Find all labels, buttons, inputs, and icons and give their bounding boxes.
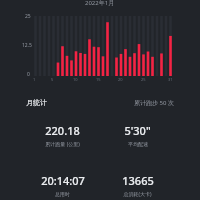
staticText: 25 bbox=[25, 13, 31, 20]
staticText: 0 bbox=[27, 71, 30, 78]
staticText: 12.5 bbox=[22, 42, 32, 49]
staticText: 5 bbox=[51, 77, 54, 82]
button[interactable]: 20:14:07 bbox=[25, 173, 100, 197]
staticText: 10 bbox=[73, 77, 78, 82]
button[interactable]: 220.18 bbox=[25, 123, 100, 148]
staticText: 2022年1月 bbox=[85, 0, 115, 7]
staticText: 1 bbox=[33, 77, 36, 82]
staticText: 总用时 bbox=[55, 191, 70, 197]
staticText: 31 bbox=[168, 77, 173, 82]
staticText: 15 bbox=[96, 77, 101, 82]
staticText: 月统计 bbox=[26, 98, 47, 107]
staticText: 20:14:07 bbox=[41, 173, 85, 188]
staticText: 13665 bbox=[122, 173, 154, 188]
button[interactable]: 13665 bbox=[100, 173, 175, 198]
staticText: 25 bbox=[141, 77, 146, 82]
staticText: 5'30" bbox=[124, 123, 151, 138]
button[interactable]: 5'30" bbox=[100, 123, 175, 147]
staticText: 累计跑量 (公里) bbox=[45, 141, 80, 148]
staticText: 累计跑步 50 次 bbox=[134, 99, 174, 107]
staticText: 220.18 bbox=[45, 123, 80, 138]
staticText: 平均配速 bbox=[128, 141, 148, 147]
staticText: 总消耗(大卡) bbox=[123, 191, 152, 198]
staticText: 20 bbox=[118, 77, 123, 82]
